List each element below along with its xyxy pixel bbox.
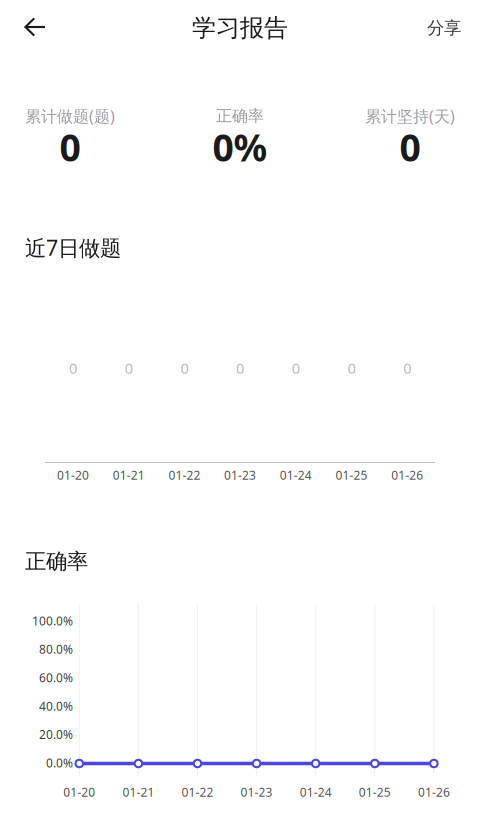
staticText: 分享: [427, 17, 461, 39]
staticText: 01-25: [359, 784, 391, 800]
staticText: 01-24: [300, 784, 332, 800]
staticText: 0: [399, 122, 420, 172]
staticText: 0: [59, 122, 80, 172]
staticText: 正确率: [25, 548, 88, 575]
staticText: 0: [403, 358, 411, 378]
staticText: 0: [125, 358, 133, 378]
staticText: 0.0%: [46, 755, 73, 771]
staticText: 01-21: [122, 784, 154, 800]
staticText: 100.0%: [32, 613, 73, 629]
staticText: 累计坚持(天): [365, 105, 455, 127]
staticText: 0%: [212, 122, 267, 172]
staticText: 0: [69, 358, 77, 378]
staticText: 01-20: [63, 784, 95, 800]
staticText: 01-26: [391, 467, 423, 483]
staticText: 01-20: [57, 467, 89, 483]
staticText: 近7日做题: [25, 233, 121, 262]
staticText: 0: [292, 358, 300, 378]
staticText: 80.0%: [39, 641, 73, 657]
staticText: 0: [180, 358, 188, 378]
staticText: 0: [347, 358, 355, 378]
staticText: 60.0%: [39, 670, 73, 685]
staticText: 累计做题(题): [25, 105, 115, 127]
staticText: 40.0%: [39, 698, 73, 714]
staticText: 学习报告: [192, 13, 288, 43]
staticText: 20.0%: [39, 726, 73, 742]
staticText: 0: [236, 358, 244, 378]
staticText: 01-22: [181, 784, 213, 800]
staticText: 01-22: [168, 467, 200, 483]
staticText: 正确率: [216, 106, 264, 126]
staticText: 01-25: [335, 467, 367, 483]
staticText: 01-24: [280, 467, 312, 483]
staticText: 01-21: [113, 467, 145, 483]
staticText: 01-23: [241, 784, 273, 800]
button[interactable]: 分享: [413, 6, 475, 50]
button[interactable]: Back: [8, 5, 62, 49]
staticText: 01-26: [418, 784, 450, 800]
staticText: 01-23: [224, 467, 256, 483]
